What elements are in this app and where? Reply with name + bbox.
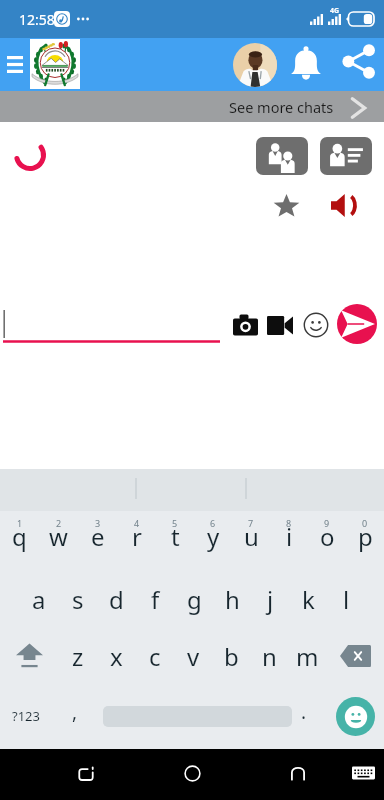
button[interactable]: n — [250, 628, 288, 684]
staticText: y — [207, 520, 220, 553]
button[interactable]: h — [213, 570, 251, 628]
button[interactable]: 0 — [346, 511, 384, 570]
button[interactable]: Hide keyboard — [346, 756, 380, 790]
button[interactable]: d — [97, 570, 136, 628]
button[interactable]: School logo — [30, 39, 80, 89]
button[interactable]: Share — [338, 41, 378, 81]
button[interactable]: 9 — [308, 511, 346, 570]
button[interactable]: j — [251, 570, 289, 628]
button[interactable]: Home — [175, 756, 209, 790]
staticText: ?123 — [12, 707, 40, 725]
staticText: s — [72, 583, 84, 616]
button[interactable]: 5 — [156, 511, 194, 570]
staticText: k — [302, 583, 315, 616]
button[interactable]: l — [327, 570, 365, 628]
staticText: o — [320, 520, 335, 553]
staticText: 9 — [324, 517, 330, 529]
button[interactable]: Sound — [326, 188, 360, 222]
staticText: d — [109, 583, 124, 616]
button[interactable]: Favourite — [269, 188, 303, 222]
button[interactable] — [98, 684, 297, 748]
staticText: e — [91, 520, 105, 553]
button[interactable]: f — [136, 570, 175, 628]
button[interactable]: b — [212, 628, 250, 684]
button[interactable]: m — [288, 628, 326, 684]
button[interactable]: 7 — [232, 511, 270, 570]
button[interactable]: Notifications — [286, 44, 326, 84]
button[interactable]: c — [136, 628, 174, 684]
staticText: t — [171, 520, 180, 553]
button[interactable]: Group members — [256, 137, 308, 175]
button[interactable]: z — [58, 628, 97, 684]
button[interactable]: Backspace — [326, 628, 384, 684]
staticText: 5 — [172, 517, 178, 529]
staticText: 8 — [286, 517, 292, 529]
staticText: i — [286, 520, 293, 553]
staticText: b — [224, 640, 239, 673]
staticText: n — [262, 640, 277, 673]
staticText: z — [72, 640, 84, 673]
button[interactable]: x — [97, 628, 136, 684]
staticText: u — [244, 520, 259, 553]
staticText: r — [132, 520, 142, 553]
staticText: 12:58 — [19, 10, 55, 29]
staticText: 4 — [134, 517, 140, 529]
staticText: j — [267, 583, 274, 616]
button[interactable]: 4 — [117, 511, 156, 570]
staticText: w — [49, 520, 68, 553]
button[interactable]: 1 — [0, 511, 39, 570]
button[interactable]: a — [19, 570, 58, 628]
button[interactable]: Profile photo — [233, 43, 277, 87]
button[interactable]: s — [58, 570, 97, 628]
staticText: m — [296, 640, 319, 673]
button[interactable]: Emoji keyboard — [326, 684, 384, 748]
button[interactable]: Recent apps — [69, 756, 103, 790]
button[interactable]: Send — [337, 304, 377, 344]
button[interactable]: . — [289, 684, 319, 748]
staticText: c — [149, 640, 161, 673]
button[interactable]: 2 — [39, 511, 78, 570]
button[interactable]: Camera — [231, 311, 259, 339]
staticText: 2 — [56, 517, 62, 529]
button[interactable]: 8 — [270, 511, 308, 570]
staticText: 4G — [330, 6, 340, 16]
button[interactable]: 3 — [78, 511, 117, 570]
staticText: See more chats — [229, 97, 334, 117]
staticText: x — [110, 640, 123, 673]
button[interactable]: 6 — [194, 511, 232, 570]
staticText: q — [12, 520, 27, 553]
staticText: 6 — [210, 517, 216, 529]
staticText: f — [151, 583, 160, 616]
staticText: 0 — [362, 517, 368, 529]
staticText: , — [72, 699, 78, 725]
staticText: . — [301, 699, 307, 725]
button[interactable]: Video — [266, 311, 294, 339]
button[interactable]: Shift — [0, 628, 58, 684]
staticText: 7 — [248, 517, 254, 529]
staticText: l — [343, 583, 350, 616]
button[interactable]: ?123 — [0, 684, 52, 748]
button[interactable]: See more chats — [0, 91, 384, 122]
staticText: h — [225, 583, 240, 616]
staticText: 1 — [17, 517, 23, 529]
staticText: g — [187, 583, 202, 616]
button[interactable]: k — [289, 570, 327, 628]
staticText: a — [32, 583, 46, 616]
button[interactable]: Back — [281, 756, 315, 790]
staticText: p — [358, 520, 373, 553]
button[interactable]: g — [175, 570, 213, 628]
button[interactable]: Emoji — [302, 311, 330, 339]
button[interactable]: , — [55, 684, 95, 748]
button[interactable]: v — [174, 628, 212, 684]
staticText: v — [187, 640, 200, 673]
button[interactable]: Contact details — [320, 137, 372, 175]
staticText: 3 — [95, 517, 101, 529]
button[interactable]: Menu — [0, 44, 30, 85]
